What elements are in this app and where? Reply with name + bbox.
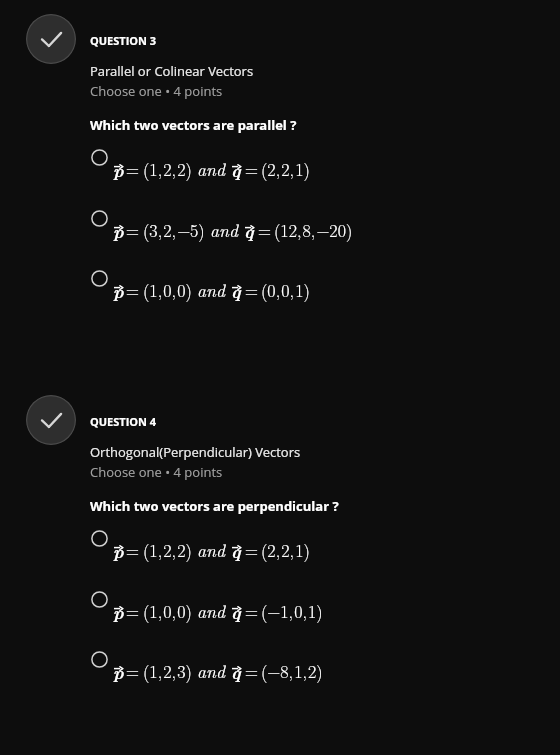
staticText: Choose one • 4 points — [90, 82, 223, 100]
button[interactable]: QUESTION 3 answered — [26, 14, 76, 64]
staticText: and — [197, 537, 225, 562]
staticText: (0, 0, 1) — [261, 277, 310, 302]
staticText: = — [126, 217, 139, 242]
staticText: Parallel or Colinear Vectors — [90, 62, 254, 80]
staticText: and — [197, 277, 225, 302]
staticText: = — [126, 156, 139, 181]
staticText: and — [197, 598, 225, 623]
staticText: (−8, 1, 2) — [261, 658, 323, 683]
staticText: = — [245, 156, 258, 181]
staticText: p — [113, 598, 124, 624]
button[interactable]: QUESTION 4 — [90, 414, 157, 429]
staticText: = — [245, 537, 258, 562]
staticText: p — [113, 277, 124, 303]
button[interactable]: Answer option 2 — [86, 578, 506, 628]
staticText: (1, 2, 2) — [143, 156, 192, 181]
staticText: = — [126, 277, 139, 302]
staticText: (12, 8, −20) — [274, 217, 353, 242]
button[interactable]: QUESTION 4 answered — [26, 395, 76, 445]
staticText: = — [126, 658, 139, 683]
staticText: p — [113, 217, 124, 243]
staticText: q — [231, 598, 241, 624]
staticText: (3, 2, −5) — [143, 217, 205, 242]
staticText: = — [126, 537, 139, 562]
staticText: and — [197, 658, 225, 683]
staticText: (1, 2, 2) — [143, 537, 192, 562]
button[interactable]: Answer option 3 — [86, 638, 506, 688]
staticText: QUESTION 4 — [90, 414, 157, 429]
staticText: Which two vectors are parallel ? — [90, 116, 297, 134]
staticText: Which two vectors are perpendicular ? — [90, 497, 339, 515]
staticText: q — [231, 658, 241, 684]
staticText: p — [113, 156, 124, 182]
staticText: and — [210, 217, 238, 242]
staticText: q — [231, 156, 241, 182]
staticText: = — [126, 598, 139, 623]
staticText: p — [113, 537, 124, 563]
staticText: q — [231, 537, 241, 563]
button[interactable]: Answer option 3 — [86, 257, 506, 307]
staticText: p — [113, 658, 124, 684]
staticText: (1, 2, 3) — [143, 658, 192, 683]
staticText: (−1, 0, 1) — [261, 598, 323, 623]
staticText: (1, 0, 0) — [143, 277, 192, 302]
staticText: (2, 2, 1) — [261, 537, 310, 562]
staticText: (2, 2, 1) — [261, 156, 310, 181]
staticText: q — [231, 277, 241, 303]
staticText: = — [245, 598, 258, 623]
staticText: = — [245, 658, 258, 683]
button[interactable]: Answer option 1 — [86, 136, 506, 186]
button[interactable]: Answer option 1 — [86, 517, 506, 567]
staticText: = — [245, 277, 258, 302]
button[interactable]: QUESTION 3 — [90, 33, 157, 48]
staticText: (1, 0, 0) — [143, 598, 192, 623]
button[interactable]: Answer option 2 — [86, 197, 506, 247]
staticText: q — [244, 217, 254, 243]
staticText: and — [197, 156, 225, 181]
staticText: QUESTION 3 — [90, 33, 157, 48]
staticText: = — [258, 217, 271, 242]
staticText: Choose one • 4 points — [90, 463, 223, 481]
staticText: Orthogonal(Perpendicular) Vectors — [90, 443, 301, 461]
